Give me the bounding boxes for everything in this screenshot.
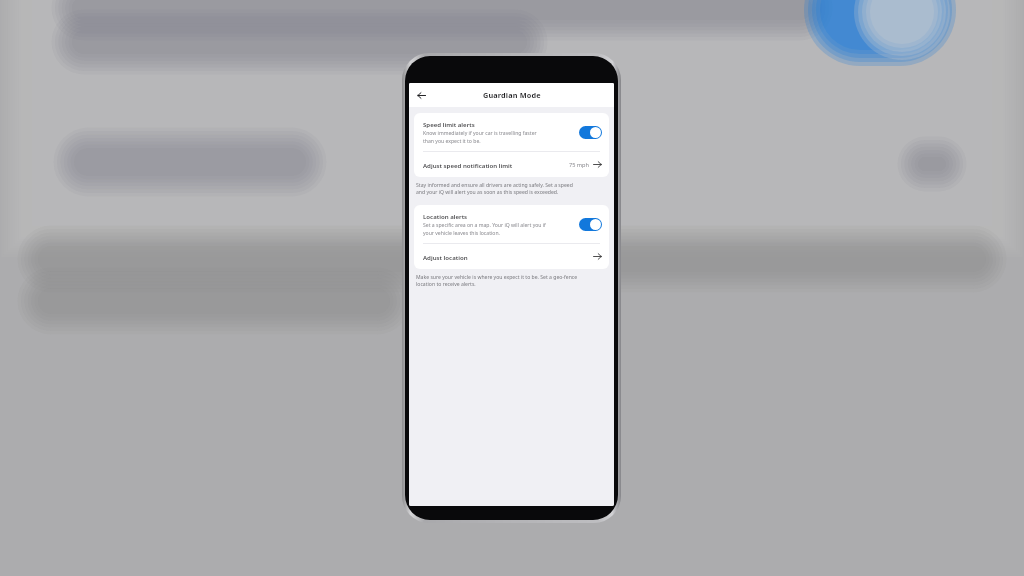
- staticText: Set a specific area on a map. Your iQ wi…: [423, 222, 546, 236]
- staticText: Location alerts: [423, 212, 468, 220]
- button[interactable]: Adjust speed notification limit: [414, 152, 609, 177]
- staticText: Adjust location: [423, 253, 593, 261]
- button[interactable]: Toggle on: [579, 218, 602, 231]
- staticText: Know immediately if your car is travelli…: [423, 130, 537, 144]
- button[interactable]: Back: [412, 86, 430, 104]
- button[interactable]: Speed limit alerts: [414, 113, 609, 151]
- staticText: 75 mph: [569, 161, 589, 169]
- button[interactable]: Adjust location: [414, 244, 609, 269]
- staticText: Stay informed and ensure all drivers are…: [416, 182, 573, 196]
- button[interactable]: Toggle on: [579, 126, 602, 139]
- staticText: Speed limit alerts: [423, 120, 475, 128]
- button[interactable]: Location alerts: [414, 205, 609, 243]
- staticText: Guardian Mode: [483, 90, 541, 100]
- staticText: Make sure your vehicle is where you expe…: [416, 274, 578, 288]
- staticText: Adjust speed notification limit: [423, 161, 569, 169]
